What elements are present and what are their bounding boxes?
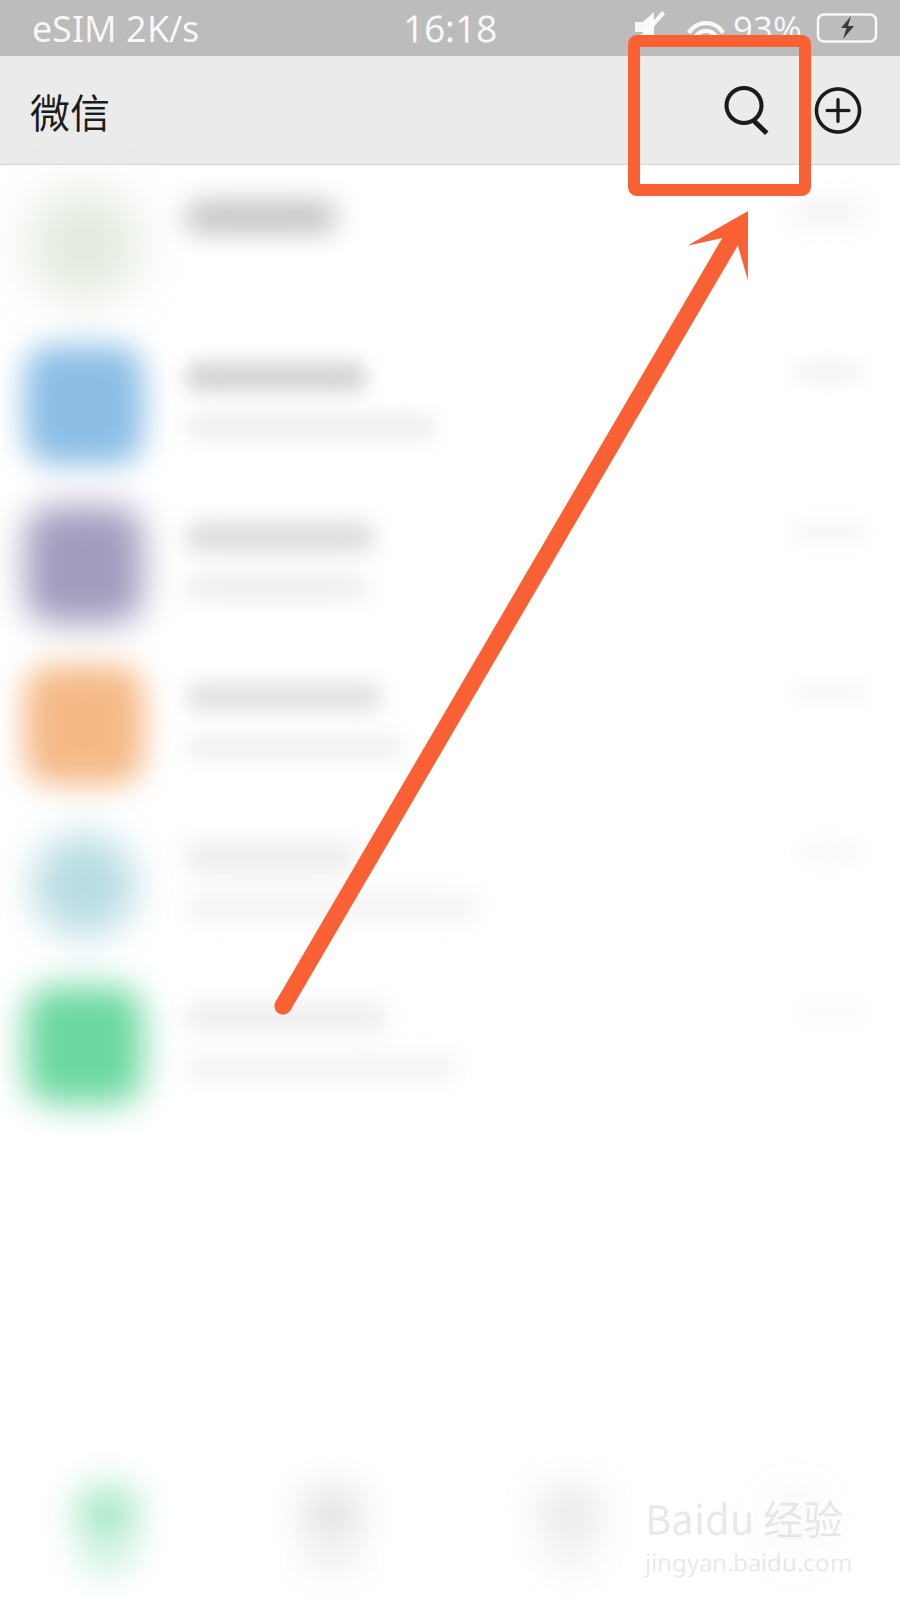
button[interactable]: Me — [675, 1440, 900, 1600]
button[interactable] — [0, 965, 900, 1125]
button[interactable] — [0, 485, 900, 645]
button[interactable] — [0, 645, 900, 805]
button[interactable] — [0, 165, 900, 325]
button[interactable]: Contacts — [225, 1440, 450, 1600]
staticText: 93% — [733, 5, 802, 51]
staticText: eSIM 2K/s — [32, 4, 199, 52]
button[interactable] — [0, 325, 900, 485]
button[interactable]: Search — [700, 56, 800, 165]
staticText: 微信 — [30, 81, 110, 139]
button[interactable] — [0, 805, 900, 965]
button[interactable]: Discover — [450, 1440, 675, 1600]
staticText: jingyan.baidu.com — [645, 1546, 852, 1578]
staticText: Baidu 经验 — [645, 1488, 843, 1546]
button[interactable]: Chats — [0, 1440, 225, 1600]
button[interactable]: New chat — [800, 56, 876, 165]
staticText: 16:18 — [403, 3, 497, 53]
